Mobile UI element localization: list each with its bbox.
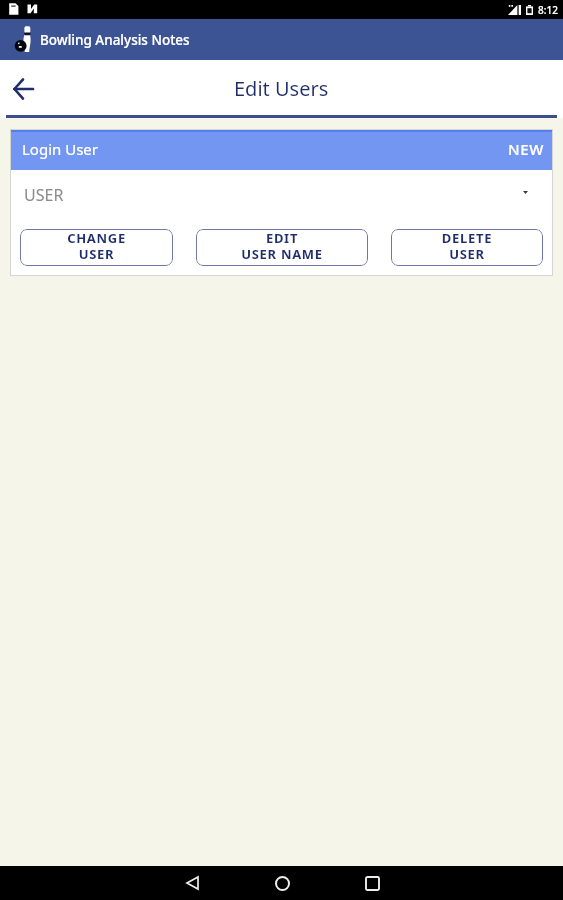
button[interactable]: Home	[265, 866, 299, 900]
staticText: CHANGE USER	[20, 229, 173, 262]
staticText: Edit Users	[234, 75, 329, 102]
button[interactable]: CHANGE USER	[20, 229, 173, 266]
button[interactable]: DELETE USER	[391, 229, 543, 266]
staticText: EDIT USER NAME	[196, 229, 368, 262]
staticText: Login User	[22, 139, 99, 159]
staticText: DELETE USER	[391, 229, 543, 262]
button[interactable]: Back	[175, 866, 209, 900]
staticText: Bowling Analysis Notes	[40, 31, 190, 49]
staticText: 8:12	[538, 3, 558, 17]
button[interactable]: USER	[10, 170, 553, 229]
staticText: NEW	[508, 139, 544, 159]
button[interactable]: EDIT USER NAME	[196, 229, 368, 266]
button[interactable]: Back	[4, 69, 42, 107]
button[interactable]: NEW	[499, 130, 553, 170]
staticText: USER	[24, 184, 64, 206]
button[interactable]: Recent apps	[355, 866, 389, 900]
